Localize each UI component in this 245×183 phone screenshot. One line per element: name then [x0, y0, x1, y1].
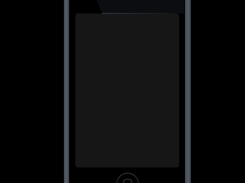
button[interactable]: Home button	[117, 173, 139, 183]
